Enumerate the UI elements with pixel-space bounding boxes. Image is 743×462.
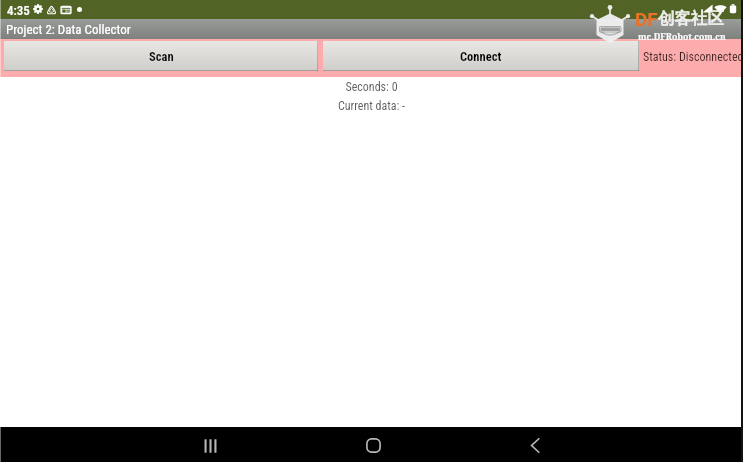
button[interactable]: Recent apps [186, 427, 234, 462]
button[interactable]: Back [511, 427, 559, 462]
staticText: Project 2: Data Collector [6, 22, 131, 37]
staticText: Seconds: 0 [0, 80, 743, 94]
staticText: 4:35 [7, 3, 30, 18]
staticText: mc.DFRobot.com.cn [638, 31, 726, 43]
staticText: Scan [149, 49, 174, 64]
staticText: Connect [460, 49, 502, 64]
button[interactable]: Connect [323, 41, 639, 71]
button[interactable]: Home [349, 427, 397, 462]
staticText: 创客社区 [658, 8, 724, 29]
staticText: Current data: - [0, 99, 743, 113]
staticText: DF [635, 8, 658, 30]
button[interactable]: Scan [4, 41, 318, 71]
staticText: Status: Disconnected [643, 50, 743, 64]
button[interactable]: Status: Disconnected [638, 39, 743, 77]
